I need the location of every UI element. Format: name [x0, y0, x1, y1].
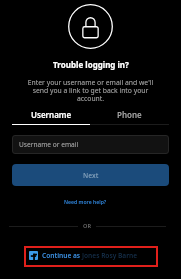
staticText: Username or email	[19, 140, 79, 149]
staticText: Trouble logging in?	[53, 59, 129, 70]
button[interactable]: Need more help?	[60, 197, 111, 208]
staticText: Need more help?	[64, 199, 107, 206]
button[interactable]: Phone	[90, 109, 169, 125]
staticText: Enter your username or email and we'll s…	[24, 78, 157, 103]
staticText: Phone	[117, 109, 142, 120]
staticText: Continue as	[42, 251, 82, 260]
button[interactable]: Username	[12, 109, 90, 125]
staticText: OR	[83, 222, 91, 230]
button[interactable]: Username or email	[12, 135, 169, 154]
other: Facebook	[29, 251, 38, 260]
button[interactable]: Facebook	[25, 248, 142, 263]
button[interactable]: Next	[12, 164, 169, 186]
staticText: Jones Rosy Barne	[82, 251, 138, 260]
staticText: Next	[83, 171, 99, 180]
staticText: Username	[31, 109, 72, 120]
